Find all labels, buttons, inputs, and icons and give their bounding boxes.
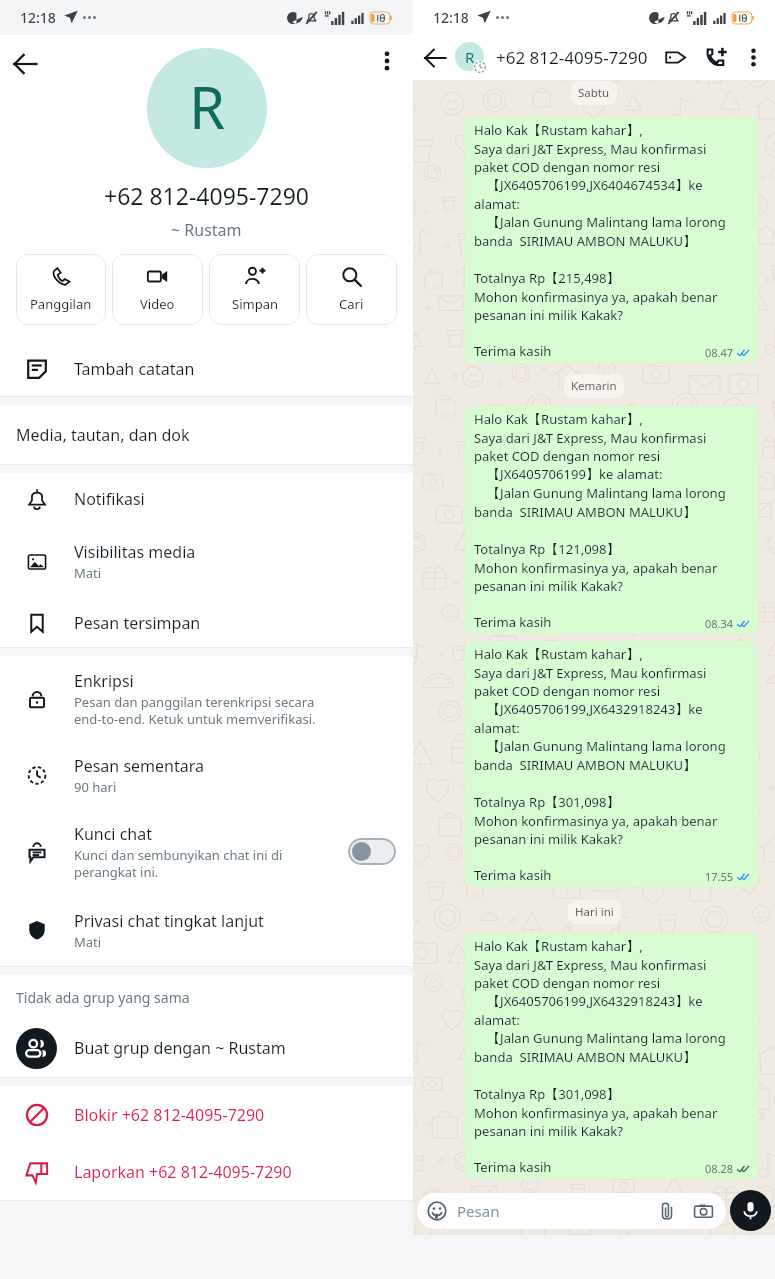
staticText: Buat grup dengan ~ Rustam [74,1037,286,1059]
staticText: 17.55 [705,869,734,884]
staticText: Sabtu [578,85,610,101]
button[interactable]: Tambah catatan [0,342,413,396]
staticText: Laporkan +62 812-4095-7290 [74,1161,292,1183]
button[interactable]: Pesan sementara [0,741,413,809]
staticText: Enkripsi [74,670,134,692]
staticText: Visibilitas media [74,541,196,563]
staticText: 12:18 [20,8,56,27]
staticText: Pesan tersimpan [74,612,201,634]
staticText: Mati [74,564,102,582]
staticText: Kunci dan sembunyikan chat ini di perang… [74,846,283,881]
button[interactable]: Video [112,254,203,325]
staticText: 08.34 [705,616,734,631]
button[interactable]: Pesan [417,1193,726,1229]
staticText: Panggilan [30,295,92,313]
staticText: Pesan sementara [74,755,204,777]
staticText: Tambah catatan [74,358,195,380]
staticText: Kunci chat [74,823,152,845]
button[interactable]: Media, tautan, dan dok [0,405,413,464]
button[interactable]: Panggilan [16,254,106,325]
staticText: Blokir +62 812-4095-7290 [74,1104,265,1126]
staticText: Video [140,295,175,313]
button[interactable]: More options [744,48,763,67]
staticText: 12:18 [433,8,469,27]
staticText: Tidak ada grup yang sama [16,988,190,1007]
button[interactable]: Privasi chat tingkat lanjut [0,894,413,966]
button[interactable]: Label [665,47,686,68]
button[interactable]: Simpan [209,254,300,325]
staticText: Pesan [457,1201,658,1221]
button[interactable]: Laporkan +62 812-4095-7290 [0,1143,413,1200]
staticText: Mati [74,933,102,951]
staticText: Privasi chat tingkat lanjut [74,910,264,932]
staticText: ~ Rustam [171,219,242,241]
button[interactable]: Visibilitas media [0,525,413,598]
button[interactable]: Back [423,46,447,70]
staticText: Media, tautan, dan dok [16,424,190,446]
staticText: +62 812-4095-7290 [104,180,309,211]
staticText: Halo Kak【Rustam kahar】, Saya dari J&T Ex… [474,937,726,1176]
button[interactable]: Pesan tersimpan [0,598,413,647]
button[interactable]: Buat grup dengan ~ Rustam [0,1019,413,1077]
staticText: 90 hari [74,778,117,796]
staticText: R [465,47,475,67]
button[interactable]: Attach [658,1202,676,1220]
staticText: Halo Kak【Rustam kahar】, Saya dari J&T Ex… [474,645,726,884]
staticText: Hari ini [575,904,614,920]
staticText: Halo Kak【Rustam kahar】, Saya dari J&T Ex… [474,410,726,631]
staticText: Cari [339,295,364,313]
staticText: R [189,67,226,146]
staticText: 08.47 [705,345,734,360]
button[interactable]: Enkripsi [0,656,413,741]
button[interactable]: Kunci chat [0,809,413,894]
staticText: Pesan dan panggilan terenkripsi secara e… [74,693,316,728]
button[interactable]: Cari [306,254,397,325]
button[interactable]: Add call [706,47,727,68]
staticText: Simpan [232,295,278,313]
button[interactable]: Blokir +62 812-4095-7290 [0,1086,413,1143]
button[interactable]: Voice message [730,1190,771,1231]
button[interactable]: R [147,48,267,168]
staticText: Notifikasi [74,488,145,510]
button[interactable]: Camera [694,1202,713,1221]
staticText: 08.28 [705,1161,734,1176]
staticText: +62 812-4095-7290 [496,46,665,69]
staticText: Halo Kak【Rustam kahar】, Saya dari J&T Ex… [474,121,726,360]
button[interactable]: More options [377,51,397,71]
button[interactable]: Kunci chat toggle [348,838,396,865]
button[interactable]: Back [12,51,38,77]
staticText: Kemarin [571,378,617,394]
button[interactable]: Notifikasi [0,473,413,525]
button[interactable]: Profile [455,42,487,74]
